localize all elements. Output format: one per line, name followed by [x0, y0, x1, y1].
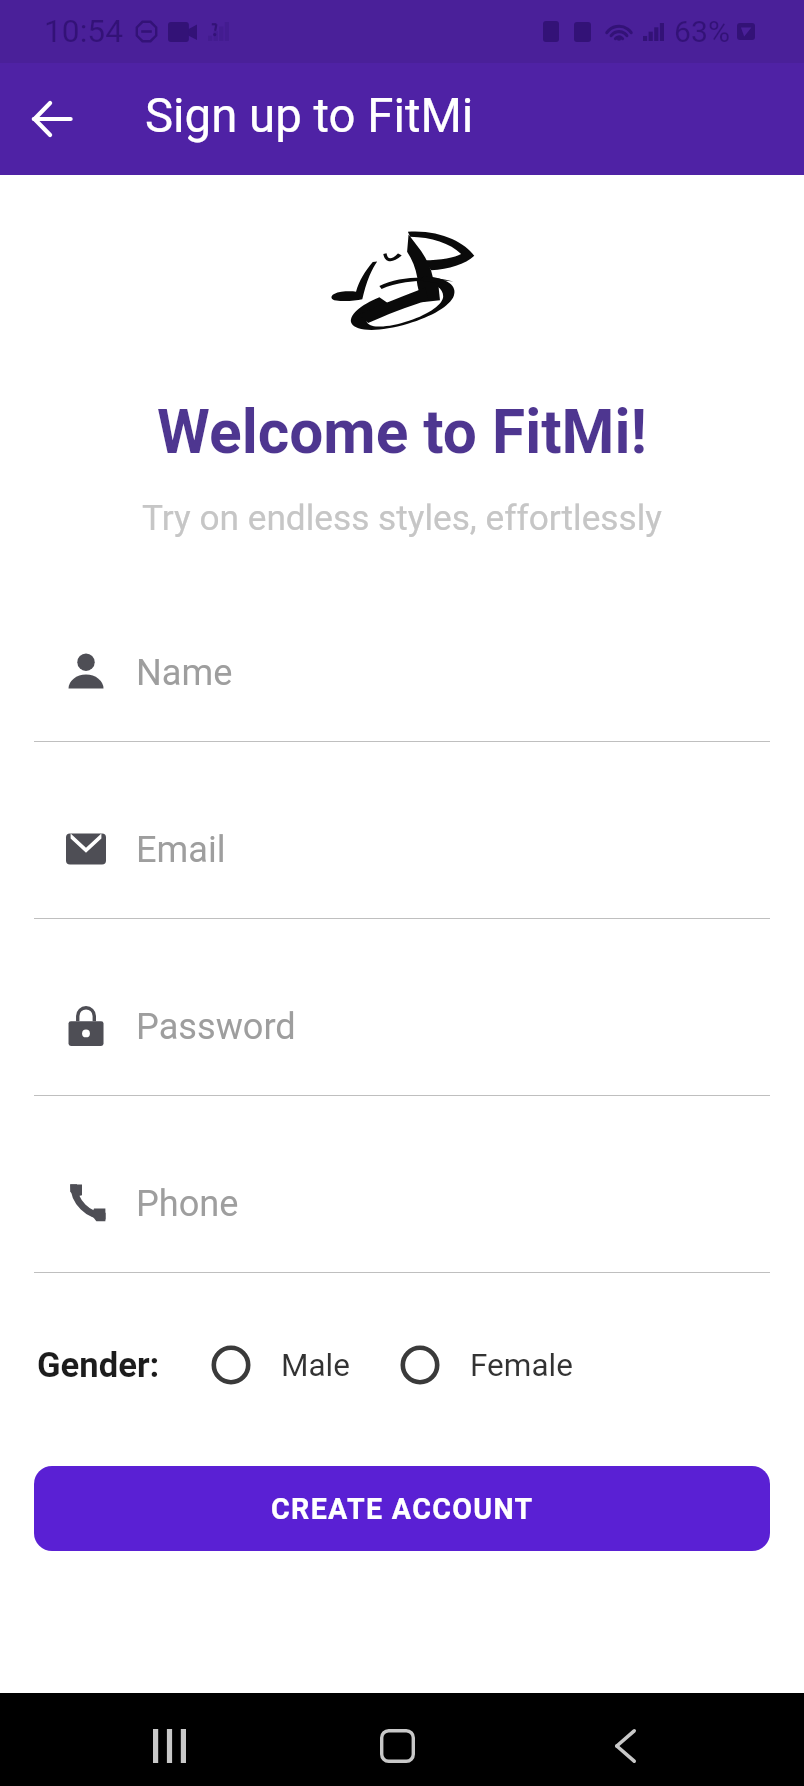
button[interactable]: Recent apps [99, 1693, 239, 1786]
button[interactable]: Home [327, 1693, 467, 1786]
staticText: Phone [136, 1182, 239, 1224]
button[interactable]: Name [34, 603, 770, 741]
staticText: CREATE ACCOUNT [271, 1492, 534, 1525]
staticText: Try on endless styles, effortlessly [0, 497, 804, 538]
staticText: 63% [674, 14, 730, 49]
staticText: Name [136, 651, 233, 693]
button[interactable]: Email [34, 780, 770, 918]
button[interactable]: Phone [34, 1134, 770, 1272]
button[interactable]: CREATE ACCOUNT [34, 1466, 770, 1551]
staticText: Email [136, 828, 226, 870]
staticText: Female [470, 1347, 573, 1384]
staticText: Sign up to FitMi [145, 88, 474, 143]
staticText: Welcome to FitMi! [0, 397, 804, 468]
staticText: Gender: [37, 1345, 160, 1386]
button[interactable]: Male [211, 1345, 350, 1385]
button[interactable]: Female [400, 1345, 573, 1385]
staticText: Male [281, 1347, 350, 1384]
button[interactable]: Password [34, 957, 770, 1095]
staticText: Password [136, 1005, 296, 1047]
staticText: 10:54 [44, 13, 123, 50]
button[interactable]: Back [0, 63, 103, 175]
button[interactable]: Back [555, 1693, 695, 1786]
